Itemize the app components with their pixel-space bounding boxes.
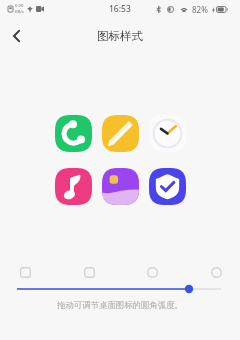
staticText: 82% <box>192 4 208 15</box>
button[interactable]: Back <box>3 23 29 49</box>
button[interactable]: Clock <box>149 115 186 152</box>
staticText: 图标样式 <box>97 29 143 43</box>
button[interactable]: Security <box>149 168 186 205</box>
button[interactable]: Phone <box>55 115 92 152</box>
button[interactable] <box>145 265 159 279</box>
staticText: 16:53 <box>109 3 131 15</box>
staticText: KB/s <box>15 9 24 15</box>
button[interactable]: Music <box>55 168 92 205</box>
button[interactable] <box>18 265 32 279</box>
staticText: 拖动可调节桌面图标的圆角弧度。 <box>0 300 240 311</box>
staticText: 0.00 <box>15 3 24 9</box>
button[interactable]: Notes <box>102 115 139 152</box>
button[interactable] <box>209 265 223 279</box>
button[interactable] <box>82 265 96 279</box>
button[interactable] <box>0 279 240 299</box>
button[interactable]: Gallery <box>102 168 139 205</box>
